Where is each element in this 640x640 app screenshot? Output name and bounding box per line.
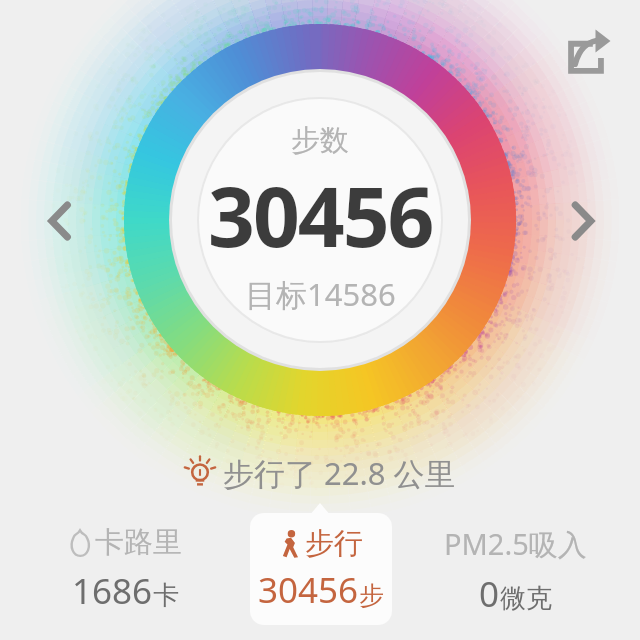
staticText: 目标14586 [245,273,396,315]
button[interactable]: 步行了 22.8 公里 [0,452,640,494]
staticText: 卡 [153,579,179,612]
staticText: 步数 [291,122,349,159]
button[interactable]: 卡路里 [40,524,210,615]
staticText: PM2.5吸入 [444,524,587,564]
staticText: 卡路里 [95,524,182,561]
staticText: 微克 [500,582,552,615]
staticText: 1686 [72,567,153,615]
staticText: 步 [359,580,384,611]
button[interactable]: 步行 [250,513,392,625]
staticText: 步行 [305,525,363,562]
button[interactable]: Previous [28,186,90,256]
staticText: 步行了 22.8 公里 [223,452,456,494]
staticText: 30456 [208,159,433,271]
button[interactable]: Next [552,186,614,256]
staticText: 30456 [258,566,359,614]
staticText: 0 [479,570,500,618]
button[interactable]: PM2.5吸入 [430,524,600,618]
button[interactable]: Share [552,22,620,90]
